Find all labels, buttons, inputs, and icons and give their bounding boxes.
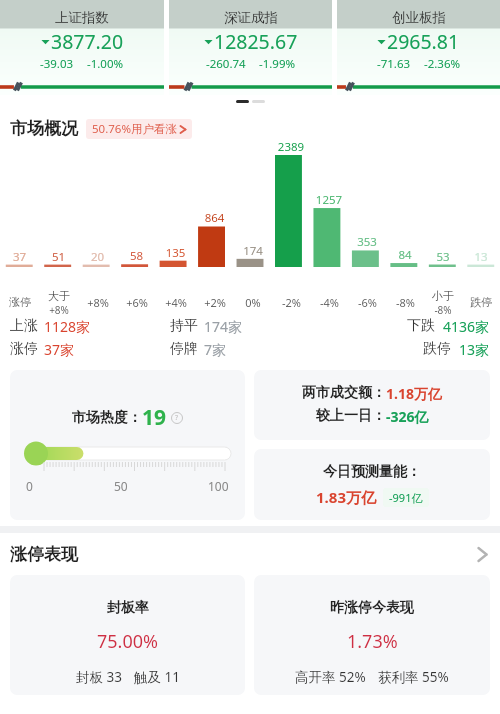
staticText: 1.83万亿 [316,487,376,507]
staticText: 174家 [204,317,243,336]
button[interactable]: 深证成指 [169,0,332,95]
button[interactable]: 上证指数 [0,0,164,95]
staticText: 4136家 [443,317,490,336]
button[interactable]: 50.76%用户看涨 [86,119,192,139]
staticText: 大于 [48,289,70,303]
staticText: 19 [142,403,167,432]
staticText: 两市成交额： [302,384,386,402]
staticText: 1.73% [347,629,398,654]
staticText: +4% [165,295,187,310]
staticText: 100 [208,478,229,494]
staticText: -8% [396,295,415,310]
staticText: 53 [424,249,462,265]
staticText: -2.36% [424,56,461,72]
staticText: 135 [156,245,195,261]
staticText: 较上一日： [316,407,386,425]
staticText: -8% [434,303,452,317]
staticText: +2% [204,295,226,310]
staticText: 1.18万亿 [386,384,442,403]
staticText: -2% [282,295,301,310]
staticText: 37家 [44,340,75,359]
staticText: +6% [126,295,148,310]
staticText: 58 [117,248,156,264]
staticText: 涨停表现 [10,544,78,565]
staticText: 2965.81 [387,28,460,55]
button[interactable]: 创业板指 [337,0,500,95]
button[interactable]: 封板率 [10,575,245,695]
staticText: 12825.67 [214,28,298,55]
staticText: 昨涨停今表现 [330,599,414,617]
staticText: 获利率 55% [378,668,449,686]
staticText: 市场概况 [10,118,78,139]
staticText: -326亿 [386,407,429,426]
staticText: -71.63 [377,56,411,72]
staticText: 75.00% [97,629,158,654]
staticText: 触及 11 [134,668,180,686]
staticText: 353 [348,234,386,250]
staticText: 封板 33 [76,668,122,686]
staticText: 市场热度： [72,409,142,427]
staticText: -260.74 [206,56,246,72]
button[interactable]: 今日预测量能： [254,449,490,520]
staticText: 864 [195,210,234,226]
staticText: 上涨 [10,317,38,335]
staticText: 深证成指 [224,9,278,26]
staticText: 跌停 [470,295,492,309]
button[interactable]: 涨停表现 [0,533,500,565]
staticText: -1.99% [259,56,296,72]
staticText: 封板率 [107,599,149,617]
staticText: -1.00% [87,56,124,72]
staticText: 下跌 [407,317,435,335]
staticText: 37 [0,249,39,265]
staticText: 创业板指 [392,9,446,26]
staticText: -4% [320,295,339,310]
staticText: 1257 [310,192,348,208]
staticText: 3877.20 [51,28,124,55]
staticText: 停牌 [170,340,198,358]
staticText: +8% [87,295,109,310]
staticText: 1128家 [44,317,91,336]
staticText: 涨停 [10,340,38,358]
staticText: 51 [39,249,78,265]
staticText: 上证指数 [55,9,109,26]
staticText: 高开率 52% [295,668,366,686]
button[interactable]: 市场热度： [10,370,245,520]
staticText: 小于 [432,289,454,303]
staticText: -991亿 [389,490,423,505]
staticText: 持平 [170,317,198,335]
staticText: ? [175,413,179,423]
other: 查看更多 [477,546,488,563]
staticText: 今日预测量能： [323,463,421,481]
staticText: -6% [358,295,377,310]
staticText: 0% [245,295,261,310]
staticText: 0 [26,478,33,494]
staticText: -39.03 [40,56,74,72]
staticText: 84 [386,247,424,263]
staticText: 50.76%用户看涨 [92,121,177,137]
staticText: +8% [49,303,69,317]
staticText: 涨停 [9,295,31,309]
staticText: 13家 [459,340,490,359]
staticText: 2389 [272,139,310,155]
staticText: 跌停 [423,340,451,358]
staticText: 174 [234,243,272,259]
staticText: 13 [462,249,500,265]
staticText: 20 [78,249,117,265]
button[interactable]: 昨涨停今表现 [254,575,490,695]
staticText: 7家 [204,340,227,359]
staticText: 50 [114,478,128,494]
button[interactable]: 两市成交额： [254,370,490,440]
